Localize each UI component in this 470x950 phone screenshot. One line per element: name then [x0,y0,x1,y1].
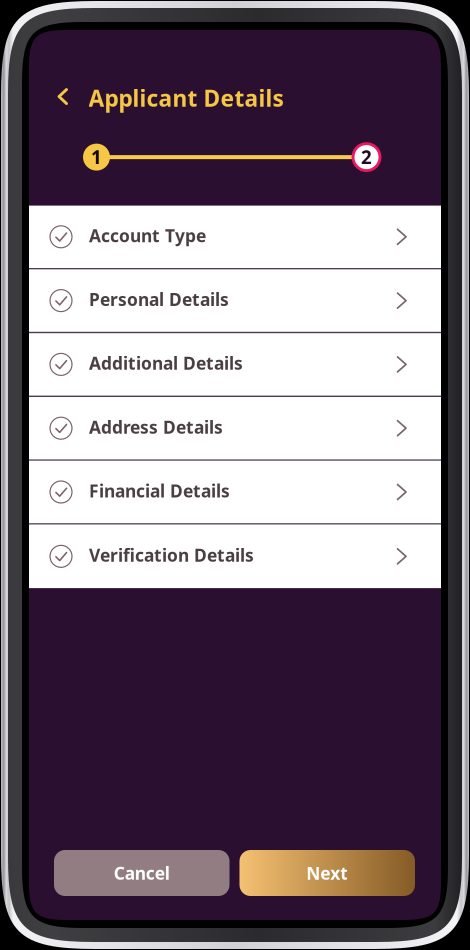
button[interactable]: Back [53,85,72,111]
staticText: Financial Details [89,479,230,502]
button[interactable]: Account Type [29,206,441,269]
button[interactable]: Cancel [54,850,229,896]
button[interactable]: Financial Details [29,461,441,525]
staticText: Next [306,861,348,884]
staticText: Personal Details [89,288,229,311]
staticText: 2 [361,145,372,169]
button[interactable]: Next [239,850,415,896]
staticText: 1 [91,145,102,169]
staticText: Applicant Details [88,83,283,113]
staticText: Account Type [89,224,206,247]
button[interactable]: Personal Details [29,269,441,333]
staticText: Additional Details [89,352,243,375]
staticText: Cancel [114,861,170,884]
button[interactable]: Additional Details [29,333,441,397]
button[interactable]: Address Details [29,397,441,461]
staticText: Address Details [89,415,223,438]
button[interactable]: Verification Details [29,525,441,588]
staticText: Verification Details [89,543,254,566]
